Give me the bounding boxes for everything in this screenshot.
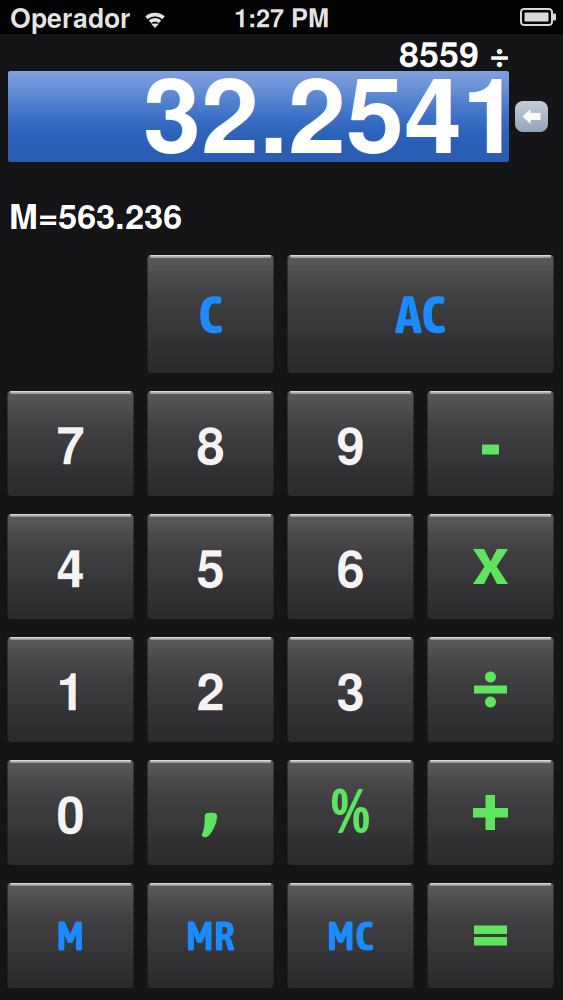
button[interactable]: Divide (427, 637, 553, 742)
button[interactable]: 3 (287, 637, 413, 742)
staticText: 32.2541 (143, 36, 520, 185)
button[interactable]: 0 (7, 760, 133, 865)
staticText: AC (395, 283, 445, 344)
button[interactable]: 7 (7, 391, 133, 496)
staticText: MC (327, 912, 374, 959)
button[interactable]: C (147, 255, 273, 373)
staticText: 8559 ÷ (399, 27, 510, 78)
button[interactable]: % (287, 760, 413, 865)
staticText: 8 (196, 407, 224, 480)
button[interactable]: Multiply (427, 514, 553, 619)
button[interactable]: Equals (427, 883, 553, 988)
button[interactable]: MR (147, 883, 273, 988)
button[interactable]: 1 (7, 637, 133, 742)
button[interactable]: 6 (287, 514, 413, 619)
button[interactable]: 8 (147, 391, 273, 496)
staticText: 9 (336, 407, 364, 480)
staticText: 3 (336, 653, 364, 726)
staticText: 1 (56, 653, 84, 726)
button[interactable]: 2 (147, 637, 273, 742)
staticText: 0 (56, 776, 84, 849)
staticText: MR (186, 912, 235, 959)
button[interactable]: 9 (287, 391, 413, 496)
button[interactable]: M (7, 883, 133, 988)
staticText: 4 (56, 530, 84, 603)
staticText: M (56, 912, 84, 959)
staticText: M=563.236 (9, 190, 182, 240)
button[interactable]: Backspace (515, 101, 548, 132)
staticText: % (331, 775, 370, 846)
button[interactable]: 4 (7, 514, 133, 619)
staticText: C (198, 283, 222, 344)
staticText: 6 (336, 530, 364, 603)
staticText: 1:27 PM (234, 0, 329, 35)
staticText: Operador (10, 0, 130, 36)
staticText: 5 (196, 530, 224, 603)
staticText: 2 (196, 653, 224, 726)
button[interactable]: , (147, 760, 273, 865)
staticText: , (202, 744, 218, 845)
button[interactable]: Minus (427, 391, 553, 496)
button[interactable]: Plus (427, 760, 553, 865)
staticText: 7 (56, 407, 84, 480)
button[interactable]: 5 (147, 514, 273, 619)
button[interactable]: MC (287, 883, 413, 988)
button[interactable]: AC (287, 255, 553, 373)
